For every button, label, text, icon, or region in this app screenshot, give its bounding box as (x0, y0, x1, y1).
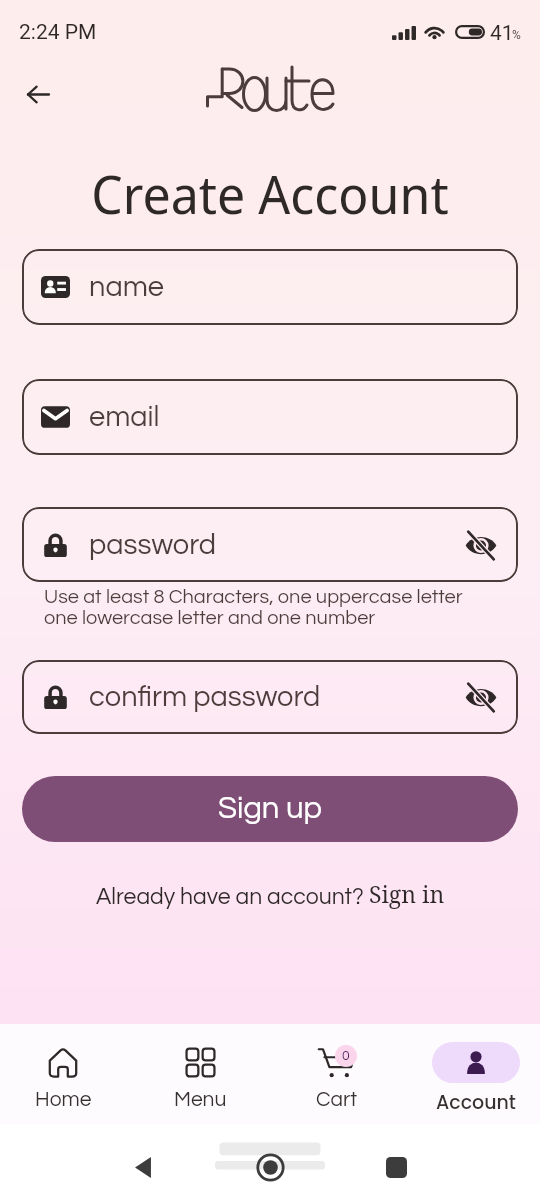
staticText: Sign up (218, 793, 323, 825)
staticText: Sign in (369, 878, 445, 909)
staticText: % (512, 28, 521, 42)
button[interactable]: Home (245, 1142, 295, 1192)
staticText: Cart (316, 1089, 358, 1111)
button[interactable]: Sign in (369, 878, 445, 909)
button[interactable]: Back (16, 72, 61, 117)
button[interactable]: Menu (144, 1024, 256, 1124)
staticText: one lowercase letter and one number (44, 608, 376, 629)
staticText: 41 (490, 21, 514, 46)
staticText: 0 (342, 1049, 350, 1063)
button[interactable]: email (22, 379, 518, 455)
button[interactable]: Sign up (22, 776, 518, 842)
staticText: Already have an account? (96, 885, 369, 909)
button[interactable]: Back (118, 1142, 168, 1192)
staticText: Create Account (0, 157, 540, 229)
staticText: Home (35, 1089, 92, 1111)
button[interactable]: Home (7, 1024, 119, 1124)
button[interactable]: password (22, 507, 518, 582)
staticText: Menu (174, 1089, 227, 1111)
staticText: 2:24 PM (19, 20, 97, 45)
button[interactable]: Toggle password visibility (462, 678, 500, 716)
button[interactable]: confirm password (22, 660, 518, 734)
staticText: confirm password (89, 682, 321, 712)
button[interactable]: Account (420, 1024, 532, 1124)
button[interactable]: Recents (371, 1142, 421, 1192)
staticText: password (89, 530, 217, 560)
button[interactable]: 0 (281, 1024, 393, 1124)
button[interactable]: Toggle password visibility (462, 526, 500, 564)
button[interactable]: name (22, 249, 518, 325)
staticText: Account (436, 1089, 516, 1116)
staticText: email (89, 402, 160, 432)
staticText: Use at least 8 Characters, one uppercase… (44, 587, 463, 608)
staticText: name (89, 272, 164, 302)
